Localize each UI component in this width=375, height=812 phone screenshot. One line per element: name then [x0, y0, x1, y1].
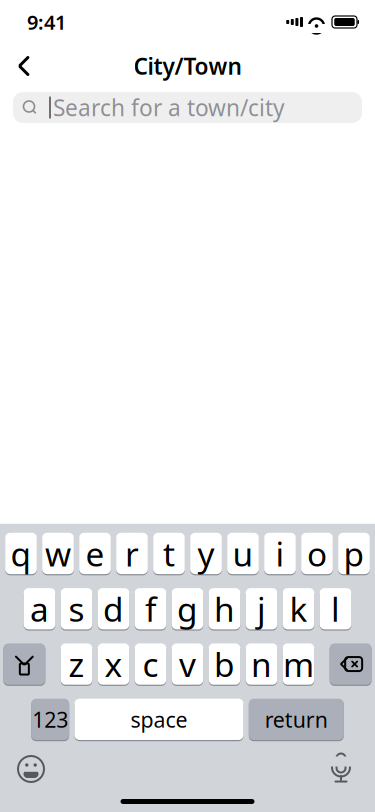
button[interactable]: b [209, 642, 240, 686]
staticText: n [251, 642, 272, 686]
button[interactable]: a [24, 587, 55, 630]
staticText: p [343, 531, 364, 576]
staticText: 9:41 [27, 9, 66, 35]
button[interactable]: u [227, 532, 259, 575]
button[interactable]: d [98, 587, 129, 630]
button[interactable]: Search for a town/city [13, 92, 362, 123]
button[interactable]: r [116, 532, 148, 575]
button[interactable]: v [172, 642, 203, 686]
button[interactable]: m [283, 642, 314, 686]
button[interactable]: Back [2, 44, 46, 88]
staticText: s [68, 587, 84, 631]
staticText: k [289, 587, 307, 631]
button[interactable]: p [338, 532, 370, 575]
staticText: v [179, 642, 196, 686]
staticText: x [104, 642, 122, 686]
staticText: e [85, 531, 104, 576]
button[interactable]: k [283, 587, 314, 630]
button[interactable]: c [135, 642, 166, 686]
button[interactable]: return [249, 698, 344, 741]
staticText: a [30, 587, 49, 631]
button[interactable]: space [74, 698, 243, 741]
button[interactable]: s [61, 587, 92, 630]
staticText: b [214, 642, 235, 686]
button[interactable]: q [5, 532, 37, 575]
staticText: j [257, 587, 266, 631]
staticText: w [45, 531, 71, 576]
button[interactable]: 123 [31, 698, 69, 741]
staticText: t [163, 531, 175, 576]
staticText: f [145, 587, 156, 631]
button[interactable]: Dictation [319, 747, 363, 791]
staticText: i [275, 531, 284, 576]
staticText: q [10, 531, 31, 576]
button[interactable]: i [264, 532, 296, 575]
button[interactable]: j [246, 587, 277, 630]
button[interactable]: w [42, 532, 74, 575]
button[interactable]: n [246, 642, 277, 686]
staticText: h [214, 587, 235, 631]
button[interactable]: t [153, 532, 185, 575]
button[interactable]: x [98, 642, 129, 686]
button[interactable]: Emoji [9, 747, 53, 791]
staticText: o [307, 531, 327, 576]
staticText: r [125, 531, 139, 576]
staticText: c [142, 642, 158, 686]
staticText: City/Town [133, 51, 241, 81]
staticText: d [103, 587, 124, 631]
staticText: return [265, 705, 328, 733]
staticText: 123 [32, 705, 68, 733]
staticText: Search for a town/city [53, 92, 285, 122]
button[interactable]: o [301, 532, 333, 575]
button[interactable]: y [190, 532, 222, 575]
button[interactable]: h [209, 587, 240, 630]
button[interactable]: e [79, 532, 111, 575]
button[interactable]: z [61, 642, 92, 686]
button[interactable]: Delete [330, 642, 372, 686]
staticText: space [130, 705, 187, 733]
staticText: g [177, 587, 198, 631]
staticText: y [197, 531, 214, 576]
button[interactable]: l [320, 587, 351, 630]
staticText: m [283, 642, 314, 686]
button[interactable]: Shift [3, 642, 45, 686]
button[interactable]: g [172, 587, 203, 630]
button[interactable]: f [135, 587, 166, 630]
staticText: l [331, 587, 340, 631]
staticText: u [232, 531, 253, 576]
staticText: z [68, 642, 84, 686]
